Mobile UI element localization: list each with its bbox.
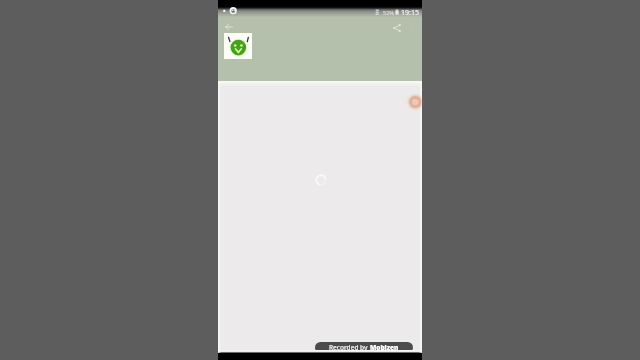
button[interactable]: Back xyxy=(219,17,238,36)
staticText: Recorded by xyxy=(329,343,370,352)
button[interactable]: Recorder xyxy=(401,88,429,116)
staticText: 19:15 xyxy=(401,8,419,16)
staticText: 52% xyxy=(383,9,394,16)
button[interactable]: HappyMod app icon xyxy=(224,33,252,59)
staticText: Mobizen xyxy=(370,343,399,352)
button[interactable]: Share xyxy=(387,18,406,37)
